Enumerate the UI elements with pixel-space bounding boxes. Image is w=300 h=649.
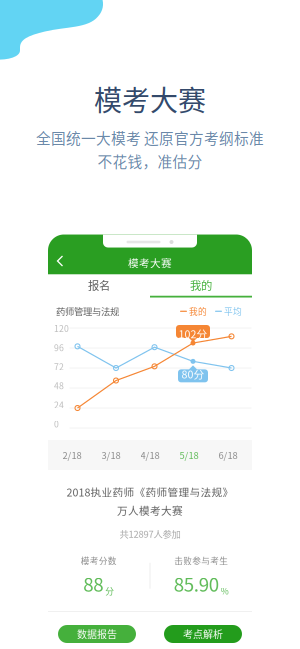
- staticText: 模考大赛: [94, 78, 206, 119]
- staticText: 考点解析: [183, 627, 223, 641]
- staticText: 6/18: [218, 448, 237, 462]
- staticText: 平均: [224, 305, 242, 317]
- staticText: 88: [83, 570, 103, 597]
- staticText: 数据报告: [77, 627, 117, 641]
- staticText: 3/18: [101, 448, 120, 462]
- staticText: 2/18: [62, 448, 81, 462]
- staticText: 模考大赛: [128, 255, 172, 270]
- button[interactable]: 报名: [48, 274, 150, 297]
- button[interactable]: 我的: [150, 274, 252, 297]
- button[interactable]: 5/18: [174, 443, 204, 467]
- button[interactable]: 3/18: [96, 443, 126, 467]
- staticText: 报名: [88, 277, 110, 293]
- staticText: 24: [54, 398, 64, 411]
- staticText: 0: [54, 417, 59, 430]
- staticText: 2018执业药师《药师管理与法规》: [66, 484, 233, 499]
- button[interactable]: Back: [48, 236, 73, 272]
- button[interactable]: 2/18: [57, 443, 87, 467]
- staticText: 72: [54, 360, 64, 373]
- staticText: 击败参与考生: [174, 554, 228, 567]
- staticText: 分: [105, 584, 114, 597]
- button[interactable]: 考点解析: [164, 625, 242, 643]
- staticText: 不花钱，准估分: [97, 150, 202, 171]
- staticText: 120: [54, 322, 69, 334]
- staticText: 共12897人参加: [119, 527, 180, 540]
- staticText: 万人模考大赛: [117, 502, 183, 518]
- button[interactable]: 数据报告: [58, 625, 136, 643]
- staticText: 全国统一大模考 还原官方考纲标准: [36, 127, 264, 148]
- staticText: 我的: [190, 277, 212, 293]
- staticText: 48: [54, 379, 64, 392]
- staticText: 模考分数: [81, 554, 117, 567]
- staticText: 4/18: [140, 448, 159, 462]
- staticText: 我的: [189, 305, 207, 317]
- staticText: 85.90: [174, 570, 219, 597]
- staticText: 5/18: [179, 448, 198, 462]
- staticText: 药师管理与法规: [56, 304, 119, 318]
- staticText: 102分: [178, 326, 207, 341]
- button[interactable]: 6/18: [213, 443, 243, 467]
- staticText: 80分: [181, 366, 204, 381]
- staticText: 96: [54, 341, 64, 354]
- staticText: %: [221, 584, 229, 597]
- button[interactable]: 4/18: [135, 443, 165, 467]
